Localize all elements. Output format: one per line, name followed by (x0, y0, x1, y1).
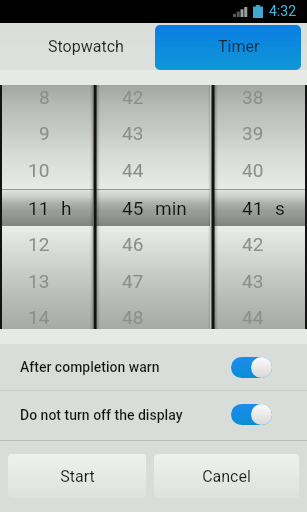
staticText: 48 (122, 306, 144, 328)
staticText: Timer (218, 37, 260, 56)
staticText: 44 (122, 159, 144, 181)
staticText: Do not turn off the display (20, 407, 183, 423)
staticText: 42 (242, 233, 264, 255)
staticText: After completion warn (20, 359, 160, 375)
button[interactable]: Timer (155, 25, 301, 70)
staticText: 4:32 (269, 3, 296, 19)
button[interactable]: 42 (95, 85, 210, 329)
staticText: h (61, 197, 72, 219)
staticText: 14 (28, 306, 50, 328)
staticText: 8 (39, 86, 50, 108)
staticText: 39 (242, 122, 264, 144)
staticText: 10 (28, 159, 50, 181)
staticText: Cancel (202, 467, 251, 486)
staticText: 42 (122, 86, 144, 108)
staticText: 13 (28, 270, 50, 292)
staticText: 47 (122, 270, 144, 292)
staticText: Stopwatch (48, 37, 124, 56)
staticText: 9 (39, 122, 50, 144)
button[interactable]: 38 (212, 85, 305, 329)
staticText: 12 (28, 233, 50, 255)
button[interactable]: Cancel (154, 454, 299, 498)
staticText: 46 (122, 233, 144, 255)
staticText: 45 (122, 197, 144, 219)
staticText: 38 (242, 86, 264, 108)
staticText: Start (60, 467, 95, 486)
staticText: 11 (28, 197, 50, 219)
staticText: 41 (242, 197, 264, 219)
button[interactable]: Do not turn off the display (0, 391, 307, 438)
staticText: 43 (242, 270, 264, 292)
button[interactable]: Start (8, 454, 146, 498)
button[interactable]: After completion warn (0, 344, 307, 390)
staticText: 40 (242, 159, 264, 181)
button[interactable]: 8 (2, 85, 93, 329)
staticText: 43 (122, 122, 144, 144)
staticText: min (155, 197, 187, 219)
staticText: 44 (242, 306, 264, 328)
staticText: s (275, 197, 285, 219)
button[interactable]: Stopwatch (6, 23, 154, 70)
